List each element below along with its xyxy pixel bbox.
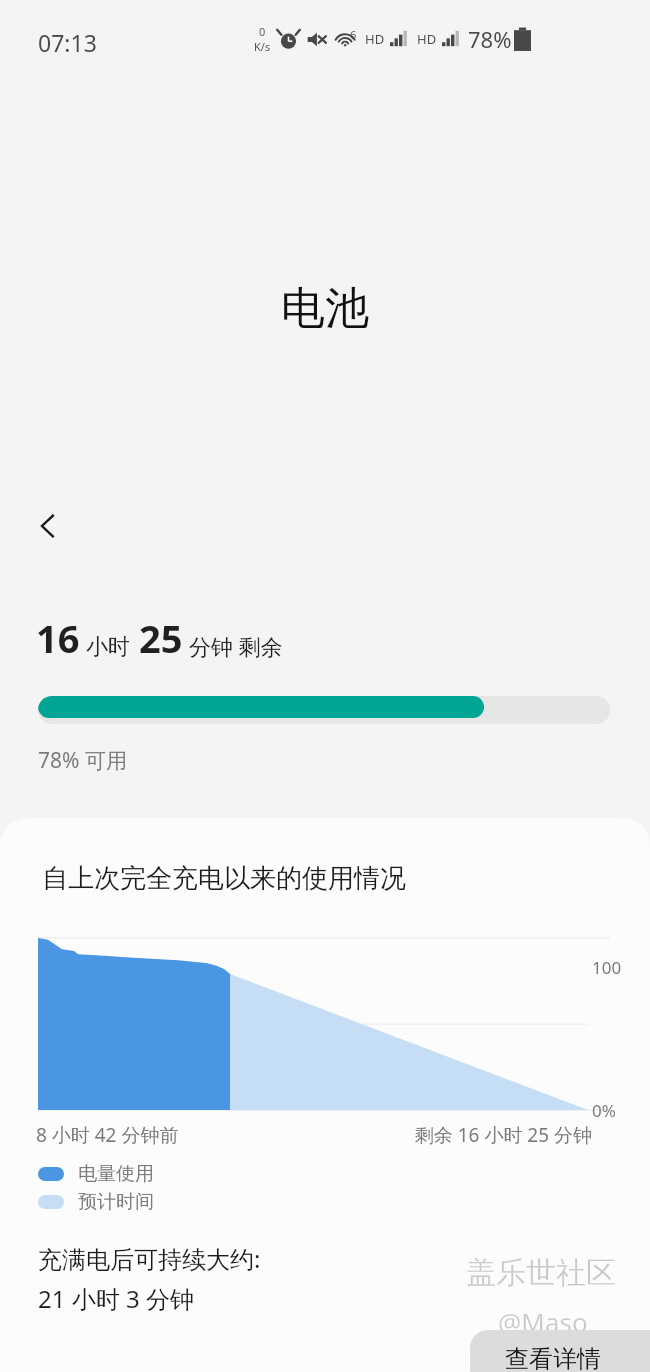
staticText: 查看详情 <box>505 1344 601 1372</box>
staticText: 6 <box>350 27 357 42</box>
staticText: 0% <box>592 1099 616 1122</box>
staticText: K/s <box>254 39 271 54</box>
staticText: 自上次完全充电以来的使用情况 <box>42 862 406 895</box>
staticText: 100 <box>592 956 622 979</box>
staticText: HD <box>365 30 385 48</box>
staticText: 0 <box>259 24 266 39</box>
staticText: 8 小时 42 分钟前 <box>36 1122 179 1148</box>
staticText: @Maso <box>498 1304 588 1339</box>
staticText: 小时 <box>86 633 130 661</box>
staticText: 16 <box>36 612 80 664</box>
staticText: 21 小时 3 分钟 <box>38 1282 194 1315</box>
staticText: 电量使用 <box>78 1162 154 1186</box>
staticText: 预计时间 <box>78 1190 154 1214</box>
staticText: 剩余 16 小时 25 分钟 <box>414 1122 592 1148</box>
staticText: 充满电后可持续大约: <box>38 1242 261 1275</box>
button[interactable]: 查看详情 <box>470 1330 650 1372</box>
staticText: 78% 可用 <box>38 746 127 775</box>
staticText: 分钟 剩余 <box>189 631 283 661</box>
staticText: 电池 <box>281 281 369 336</box>
staticText: 07:13 <box>38 27 97 58</box>
staticText: HD <box>417 30 437 48</box>
button[interactable]: Back <box>14 492 82 560</box>
staticText: 25 <box>139 612 183 664</box>
staticText: 盖乐世社区 <box>466 1254 616 1292</box>
staticText: 78% <box>468 24 512 54</box>
